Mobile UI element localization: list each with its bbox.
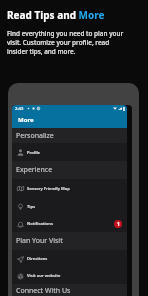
staticText: Visit our website (27, 273, 61, 278)
button[interactable]: Visit our website (12, 267, 127, 284)
staticText: Sensory Friendly Map (27, 186, 70, 191)
staticText: 1 (117, 221, 120, 228)
staticText: Personalize (16, 131, 54, 141)
button[interactable]: Profile (12, 143, 127, 161)
button[interactable]: Tips (12, 197, 127, 215)
staticText: Connect With Us (16, 286, 71, 296)
button[interactable]: Sensory Friendly Map (12, 179, 127, 197)
staticText: Plan Your Visit (16, 236, 63, 246)
button[interactable]: Notifications (12, 215, 127, 232)
staticText: Tips (27, 204, 36, 209)
staticText: Experience (16, 165, 53, 175)
staticText: Read Tips and More (7, 8, 105, 22)
button[interactable]: Directions (12, 250, 127, 267)
staticText: Directions (27, 256, 48, 261)
button[interactable]: More (12, 112, 127, 128)
staticText: 2:43 (15, 106, 24, 112)
staticText: Profile (27, 150, 41, 155)
staticText: Notifications (27, 221, 53, 226)
staticText: More (18, 116, 34, 124)
staticText: Find everything you need to plan your vi… (7, 29, 127, 56)
